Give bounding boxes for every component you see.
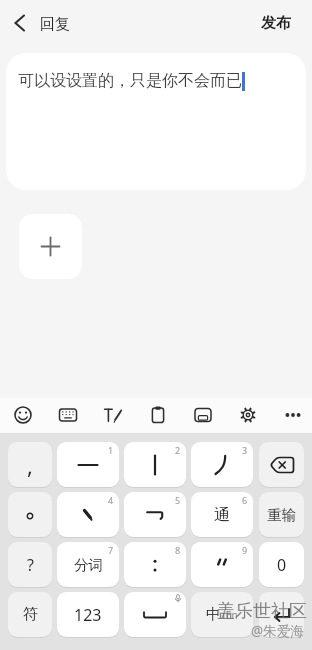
staticText: 3 bbox=[242, 444, 248, 456]
button[interactable] bbox=[232, 399, 264, 431]
staticText: 9 bbox=[242, 544, 248, 556]
staticText: 123 bbox=[74, 604, 102, 626]
button[interactable] bbox=[2, 5, 38, 41]
staticText: 回复 bbox=[40, 15, 70, 34]
button[interactable] bbox=[142, 399, 174, 431]
staticText: 发布 bbox=[261, 14, 291, 33]
button[interactable]: 123 bbox=[57, 592, 119, 637]
button[interactable] bbox=[259, 592, 304, 637]
staticText: 可以设设置的，只是你不会而已 bbox=[18, 71, 242, 91]
button[interactable] bbox=[97, 399, 129, 431]
staticText: 4 bbox=[108, 494, 114, 506]
button[interactable]: 中/En bbox=[191, 592, 253, 637]
staticText: 7 bbox=[108, 544, 114, 556]
staticText: 中/En bbox=[206, 605, 238, 624]
button[interactable]: 符 bbox=[8, 592, 52, 637]
staticText: 符 bbox=[23, 605, 38, 624]
staticText: 通 bbox=[214, 505, 230, 525]
staticText: 重输 bbox=[267, 506, 296, 524]
button[interactable]: ? bbox=[8, 542, 52, 587]
button[interactable]: 5 bbox=[124, 492, 186, 537]
staticText: @朱爱海 bbox=[251, 622, 304, 640]
staticText: 0 bbox=[277, 554, 287, 576]
staticText: 盖乐世社区 bbox=[217, 600, 307, 623]
button[interactable] bbox=[52, 399, 84, 431]
button[interactable] bbox=[19, 214, 82, 279]
button[interactable]: 3 bbox=[191, 442, 253, 487]
staticText: 1 bbox=[108, 444, 114, 456]
staticText: , bbox=[27, 450, 33, 480]
button[interactable]: 发布 bbox=[250, 5, 302, 41]
button[interactable] bbox=[277, 399, 309, 431]
button[interactable] bbox=[7, 399, 39, 431]
button[interactable]: 4 bbox=[57, 492, 119, 537]
staticText: 5 bbox=[175, 494, 181, 506]
button[interactable]: 重输 bbox=[259, 492, 304, 537]
button[interactable] bbox=[124, 592, 186, 637]
staticText: 8 bbox=[175, 544, 181, 556]
button[interactable]: , bbox=[8, 442, 52, 487]
button[interactable]: 8 bbox=[124, 542, 186, 587]
button[interactable] bbox=[259, 442, 304, 487]
button[interactable]: 0 bbox=[259, 542, 304, 587]
button[interactable]: 9 bbox=[191, 542, 253, 587]
button[interactable]: 通 bbox=[191, 492, 253, 537]
staticText: ? bbox=[27, 554, 34, 576]
button[interactable] bbox=[8, 492, 52, 537]
button[interactable]: 2 bbox=[124, 442, 186, 487]
staticText: 6 bbox=[242, 494, 248, 506]
button[interactable]: 1 bbox=[57, 442, 119, 487]
staticText: 2 bbox=[175, 444, 181, 456]
staticText: 分词 bbox=[74, 556, 103, 574]
button[interactable] bbox=[187, 399, 219, 431]
button[interactable]: 分词 bbox=[57, 542, 119, 587]
